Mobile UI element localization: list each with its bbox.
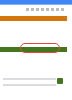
- button[interactable]: Sheets: [57, 78, 63, 84]
